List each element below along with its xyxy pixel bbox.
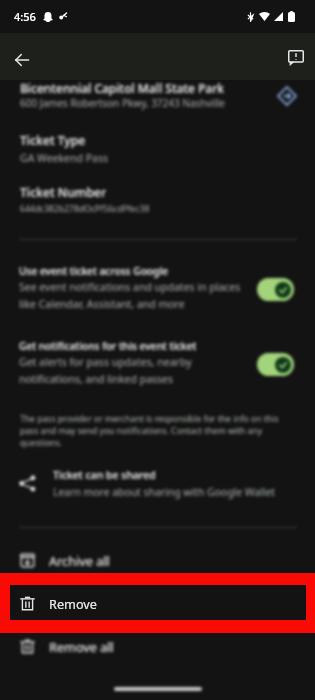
- button[interactable]: Toggle: [257, 353, 294, 376]
- staticText: 644dc382b278dOcPf56cdPfec38: [20, 203, 150, 215]
- staticText: Get alerts for pass updates, nearby noti…: [19, 355, 192, 386]
- staticText: GA Weekend Pass: [20, 151, 108, 165]
- button[interactable]: Directions: [275, 84, 299, 108]
- button[interactable]: Send feedback: [276, 38, 315, 78]
- button[interactable]: Back: [2, 40, 42, 80]
- staticText: Archive all: [49, 552, 110, 569]
- staticText: 4:56: [14, 9, 36, 24]
- staticText: Ticket Type: [20, 132, 86, 149]
- button[interactable]: Archive all: [0, 539, 315, 582]
- staticText: Remove: [49, 595, 97, 612]
- button[interactable]: Remove all: [0, 625, 315, 668]
- staticText: The pass provider or merchant is respons…: [20, 413, 293, 449]
- staticText: See event notifications and updates in p…: [19, 280, 241, 311]
- staticText: Get notifications for this event ticket: [19, 339, 197, 353]
- staticText: Ticket can be shared: [53, 468, 156, 482]
- staticText: Learn more about sharing with Google Wal…: [53, 485, 276, 499]
- staticText: Remove all: [49, 638, 114, 655]
- staticText: 600 James Robertson Pkwy, 37243 Nashvill…: [20, 96, 225, 110]
- button[interactable]: Get notifications for this event ticket: [0, 339, 315, 386]
- button[interactable]: Toggle: [257, 278, 294, 301]
- staticText: Use event ticket across Google: [19, 264, 168, 278]
- button[interactable]: Remove: [0, 582, 315, 625]
- staticText: Bicentennial Capitol Mall State Park: [20, 80, 224, 96]
- button[interactable]: Use event ticket across Google: [0, 264, 315, 311]
- button[interactable]: Ticket can be shared: [0, 463, 315, 503]
- staticText: Ticket Number: [20, 184, 107, 201]
